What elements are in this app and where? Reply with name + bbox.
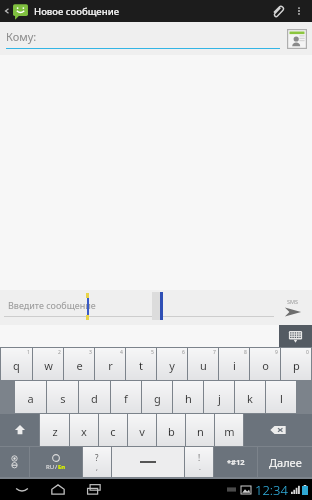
button[interactable]: 9 [250, 348, 280, 380]
staticText: 4 [120, 349, 123, 356]
button[interactable]: v [128, 414, 156, 446]
button[interactable]: k [235, 381, 265, 413]
button[interactable]: 7 [188, 348, 218, 380]
button[interactable]: 8 [219, 348, 249, 380]
staticText: n [197, 424, 204, 439]
button[interactable]: b [157, 414, 185, 446]
staticText: SMS [287, 298, 299, 305]
staticText: a [27, 391, 34, 406]
button[interactable]: Attach [264, 0, 290, 22]
button[interactable]: Space [112, 447, 184, 477]
button[interactable]: 0 [281, 348, 311, 380]
staticText: d [91, 391, 98, 406]
button[interactable]: Backspace [244, 414, 312, 446]
button[interactable]: 3 [64, 348, 94, 380]
staticText: q [13, 358, 20, 373]
button[interactable]: x [70, 414, 98, 446]
button[interactable]: n [186, 414, 214, 446]
staticText: ? [95, 452, 99, 463]
staticText: RU [46, 463, 55, 471]
button[interactable]: d [79, 381, 110, 413]
staticText: o [262, 358, 269, 373]
button[interactable]: *#12 [214, 447, 257, 477]
staticText: . [199, 463, 201, 473]
button[interactable]: Input options [0, 447, 29, 477]
staticText: u [200, 358, 207, 373]
staticText: k [247, 391, 253, 406]
staticText: *#12 [227, 457, 245, 467]
staticText: j [218, 391, 221, 406]
staticText: En [58, 463, 66, 471]
staticText: 3 [89, 349, 92, 356]
staticText: ! [198, 452, 201, 463]
button[interactable]: f [111, 381, 141, 413]
staticText: 12:34 [255, 481, 288, 499]
button[interactable]: Send SMS [276, 290, 310, 325]
button[interactable]: Кому: [6, 29, 280, 49]
staticText: Новое сообщение [34, 5, 120, 18]
button[interactable]: 1 [1, 348, 32, 380]
button[interactable]: j [204, 381, 234, 413]
button[interactable]: Далее [258, 447, 312, 477]
button[interactable]: Введите сообщение [4, 290, 274, 325]
staticText: x [81, 424, 87, 439]
button[interactable]: m [215, 414, 243, 446]
button[interactable]: Change language [30, 447, 82, 477]
staticText: v [139, 424, 145, 439]
staticText: , [96, 463, 98, 473]
button[interactable]: Pick contact [286, 28, 308, 50]
button[interactable]: Back [2, 0, 11, 22]
staticText: Кому: [6, 29, 37, 44]
staticText: 8 [244, 349, 247, 356]
staticText: r [108, 358, 113, 373]
staticText: l [280, 391, 283, 406]
button[interactable]: ? [83, 447, 111, 477]
staticText: s [60, 391, 66, 406]
staticText: i [233, 358, 236, 373]
staticText: 0 [306, 349, 309, 356]
staticText: Далее [269, 455, 302, 470]
staticText: 6 [182, 349, 185, 356]
button[interactable]: c [99, 414, 127, 446]
staticText: w [44, 358, 53, 373]
button[interactable]: l [266, 381, 296, 413]
staticText: f [124, 391, 128, 406]
staticText: 9 [275, 349, 278, 356]
button[interactable]: Shift [0, 414, 39, 446]
staticText: z [52, 424, 58, 439]
button[interactable]: h [173, 381, 203, 413]
staticText: 7 [213, 349, 216, 356]
staticText: b [168, 424, 175, 439]
button[interactable]: Messaging app [11, 2, 29, 20]
button[interactable]: a [15, 381, 46, 413]
staticText: c [110, 424, 116, 439]
staticText: t [139, 358, 143, 373]
staticText: 1 [27, 349, 30, 356]
staticText: Введите сообщение [8, 299, 96, 311]
button[interactable]: 5 [126, 348, 156, 380]
staticText: p [293, 358, 300, 373]
staticText: 5 [151, 349, 154, 356]
staticText: h [185, 391, 192, 406]
staticText: e [76, 358, 83, 373]
staticText: / [55, 463, 58, 471]
button[interactable]: Back [4, 479, 40, 500]
button[interactable]: More options [290, 0, 308, 22]
button[interactable]: Home [40, 479, 76, 500]
button[interactable]: 4 [95, 348, 125, 380]
button[interactable]: g [142, 381, 172, 413]
button[interactable]: 2 [33, 348, 63, 380]
staticText: 2 [58, 349, 61, 356]
button[interactable]: z [40, 414, 69, 446]
button[interactable]: 6 [157, 348, 187, 380]
button[interactable]: ! [185, 447, 213, 477]
staticText: g [154, 391, 161, 406]
button[interactable]: Hide keyboard [279, 325, 312, 347]
staticText: m [224, 424, 235, 439]
button[interactable]: s [47, 381, 78, 413]
staticText: y [169, 358, 175, 373]
button[interactable]: Recent apps [76, 479, 112, 500]
